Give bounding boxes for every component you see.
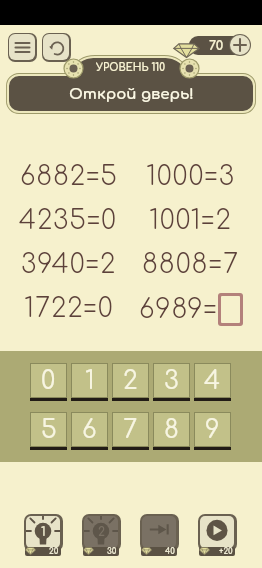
button[interactable]: 7 <box>112 412 149 450</box>
staticText: 70 <box>209 39 224 53</box>
staticText: 40 <box>165 547 175 556</box>
button[interactable]: Add gems <box>230 35 250 55</box>
button[interactable]: Hint costing +20 gems <box>198 514 238 556</box>
button[interactable]: 2 <box>112 363 149 401</box>
staticText: 3940=2 <box>21 250 117 280</box>
staticText: 2 <box>98 525 106 538</box>
button[interactable]: 6 <box>71 412 108 450</box>
staticText: 1722=0 <box>24 294 114 324</box>
button[interactable]: 4 <box>194 363 231 401</box>
staticText: 1 <box>85 367 95 395</box>
staticText: 30 <box>107 547 117 556</box>
button[interactable]: 9 <box>194 412 231 450</box>
staticText: 8808=7 <box>142 250 240 280</box>
button[interactable]: Hint costing 30 gems <box>82 514 122 556</box>
button[interactable]: Menu <box>9 34 35 60</box>
button[interactable]: 8 <box>153 412 190 450</box>
button[interactable]: Hint costing 20 gems <box>24 514 64 556</box>
staticText: 9 <box>205 416 220 444</box>
staticText: 8 <box>164 416 179 444</box>
staticText: 2 <box>123 367 138 395</box>
staticText: 6989= <box>139 295 218 325</box>
staticText: 1 <box>41 525 46 538</box>
button[interactable]: Hint costing 40 gems <box>140 514 180 556</box>
button[interactable]: 1 <box>71 363 108 401</box>
staticText: 1000=3 <box>146 162 235 192</box>
staticText: 4 <box>204 367 221 395</box>
staticText: +20 <box>219 547 233 556</box>
staticText: 1001=2 <box>149 206 232 236</box>
staticText: 5 <box>41 416 57 444</box>
button[interactable]: 5 <box>30 412 67 450</box>
button[interactable]: 70 <box>189 36 248 55</box>
button[interactable]: 0 <box>30 363 67 401</box>
staticText: 6 <box>82 416 97 444</box>
button[interactable]: 3 <box>153 363 190 401</box>
staticText: Открой дверь! <box>69 86 194 103</box>
button[interactable]: Undo <box>43 34 69 60</box>
staticText: 7 <box>123 416 138 444</box>
staticText: 6882=5 <box>20 162 118 192</box>
staticText: 20 <box>49 547 59 556</box>
staticText: 3 <box>164 367 179 395</box>
staticText: 4235=0 <box>19 206 118 236</box>
staticText: УРОВЕНЬ 110 <box>96 62 166 73</box>
staticText: 0 <box>41 367 56 395</box>
